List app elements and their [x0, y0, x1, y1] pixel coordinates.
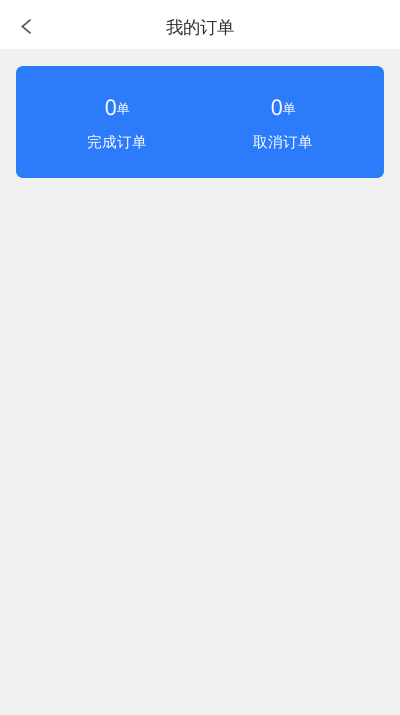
staticText: 完成订单 [87, 133, 147, 151]
button[interactable]: 0单 [34, 66, 200, 178]
staticText: 0单 [270, 93, 295, 121]
staticText: 0单 [104, 93, 129, 121]
button[interactable]: 0单 [200, 66, 366, 178]
button[interactable]: Back [0, 0, 53, 51]
staticText: 我的订单 [166, 17, 234, 38]
staticText: 取消订单 [253, 133, 313, 151]
